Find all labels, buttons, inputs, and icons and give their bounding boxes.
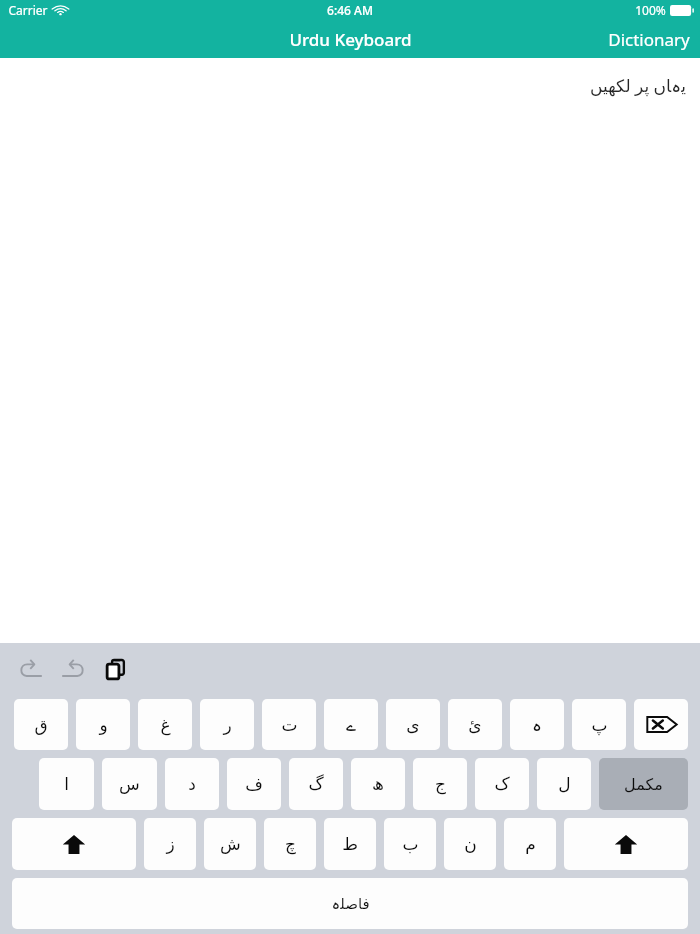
staticText: Urdu Keyboard [289, 28, 412, 51]
staticText: و [99, 715, 108, 735]
button[interactable]: ل [537, 758, 591, 810]
button[interactable]: ئ [448, 699, 502, 750]
button[interactable]: ت [262, 699, 316, 750]
staticText: ھ [372, 774, 384, 794]
staticText: ج [435, 774, 446, 794]
button[interactable]: فاصلہ [12, 878, 688, 929]
button[interactable]: د [165, 758, 219, 810]
button[interactable]: ش [204, 818, 256, 870]
button[interactable]: ن [444, 818, 496, 870]
button[interactable]: س [102, 758, 157, 810]
staticText: ط [342, 834, 358, 854]
button[interactable]: Copy [94, 648, 136, 690]
staticText: ق [34, 715, 48, 735]
staticText: 6:46 AM [327, 2, 373, 18]
staticText: ے [346, 715, 356, 735]
button[interactable]: ب [384, 818, 436, 870]
button[interactable]: ز [144, 818, 196, 870]
button[interactable]: Shift [564, 818, 688, 870]
button[interactable]: ر [200, 699, 254, 750]
staticText: مکمل [624, 775, 663, 794]
staticText: ل [558, 774, 571, 794]
staticText: Dictionary [608, 28, 690, 51]
staticText: ت [281, 715, 298, 735]
button[interactable]: Backspace [634, 699, 688, 750]
button[interactable]: ا [39, 758, 94, 810]
button[interactable]: مکمل [599, 758, 688, 810]
staticText: ا [64, 774, 69, 794]
staticText: ئ [468, 715, 482, 735]
button[interactable]: ھ [351, 758, 405, 810]
button[interactable]: یہاں پر لکھیں [0, 58, 700, 643]
button[interactable]: Undo [10, 648, 52, 690]
button[interactable]: و [76, 699, 130, 750]
button[interactable]: ط [324, 818, 376, 870]
button[interactable]: ک [475, 758, 529, 810]
button[interactable]: ف [227, 758, 281, 810]
button[interactable]: چ [264, 818, 316, 870]
staticText: ک [494, 774, 510, 794]
button[interactable]: Dictionary [598, 22, 700, 57]
staticText: د [188, 774, 196, 794]
staticText: س [119, 774, 140, 794]
button[interactable]: گ [289, 758, 343, 810]
button[interactable]: ج [413, 758, 467, 810]
staticText: ن [464, 834, 477, 854]
button[interactable]: Redo [52, 648, 94, 690]
staticText: چ [285, 834, 296, 854]
staticText: غ [160, 715, 171, 735]
staticText: Carrier [8, 2, 48, 18]
staticText: ز [166, 834, 175, 854]
staticText: ر [223, 715, 232, 735]
staticText: یہاں پر لکھیں [590, 74, 686, 97]
button[interactable]: پ [572, 699, 626, 750]
button[interactable]: م [504, 818, 556, 870]
staticText: ش [220, 834, 241, 854]
button[interactable]: ی [386, 699, 440, 750]
button[interactable]: ہ [510, 699, 564, 750]
button[interactable]: غ [138, 699, 192, 750]
button[interactable]: ق [14, 699, 68, 750]
staticText: پ [591, 715, 608, 735]
staticText: م [525, 834, 536, 854]
staticText: 100% [635, 2, 666, 18]
staticText: ف [245, 774, 263, 794]
staticText: ی [406, 715, 420, 735]
button[interactable]: ے [324, 699, 378, 750]
staticText: گ [308, 774, 324, 794]
staticText: ہ [532, 715, 542, 735]
button[interactable]: Shift [12, 818, 136, 870]
staticText: ب [402, 834, 419, 854]
staticText: فاصلہ [331, 895, 370, 912]
